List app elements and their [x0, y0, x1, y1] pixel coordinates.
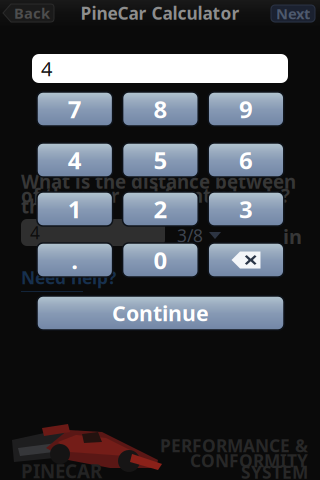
staticText: 7: [68, 93, 82, 125]
staticText: in: [283, 223, 302, 250]
staticText: .: [71, 244, 78, 276]
staticText: Need help?: [21, 266, 116, 289]
staticText: 4: [41, 55, 52, 82]
staticText: 8: [153, 93, 167, 125]
staticText: Back: [14, 3, 50, 23]
staticText: PERFORMANCE &: [160, 434, 308, 457]
button[interactable]: 0: [123, 243, 198, 277]
staticText: SYSTEM: [241, 460, 308, 480]
staticText: 5: [153, 144, 167, 176]
staticText: CONFORMITY: [190, 449, 308, 472]
button[interactable]: .: [37, 243, 113, 277]
button[interactable]: Back: [3, 4, 54, 22]
button[interactable]: Next: [271, 5, 315, 22]
button[interactable]: Need help?: [21, 266, 116, 292]
staticText: of the rear and front wheels?: [21, 183, 290, 208]
staticText: 4: [68, 144, 82, 176]
staticText: What is the distance between the axles: [21, 169, 296, 219]
staticText: 0: [153, 244, 167, 276]
staticText: 4: [30, 221, 40, 244]
button[interactable]: 3: [208, 192, 284, 226]
staticText: 1: [68, 193, 82, 225]
staticText: 6: [239, 144, 253, 176]
button[interactable]: 8: [123, 92, 198, 126]
staticText: 9: [239, 93, 253, 125]
button[interactable]: 4: [37, 143, 113, 177]
button[interactable]: 2: [123, 192, 198, 226]
button[interactable]: 5: [123, 143, 198, 177]
staticText: PINECAR: [21, 459, 102, 480]
button[interactable]: Delete: [208, 243, 284, 277]
staticText: Continue: [112, 299, 209, 327]
staticText: 3/8: [177, 224, 203, 247]
staticText: 3: [239, 193, 253, 225]
staticText: PineCar Calculator: [80, 1, 239, 24]
staticText: 2: [153, 193, 167, 225]
button[interactable]: 7: [37, 92, 113, 126]
button[interactable]: Continue: [37, 296, 284, 330]
staticText: Next: [276, 4, 310, 23]
button[interactable]: 1: [37, 192, 113, 226]
button[interactable]: 9: [208, 92, 284, 126]
button[interactable]: 6: [208, 143, 284, 177]
